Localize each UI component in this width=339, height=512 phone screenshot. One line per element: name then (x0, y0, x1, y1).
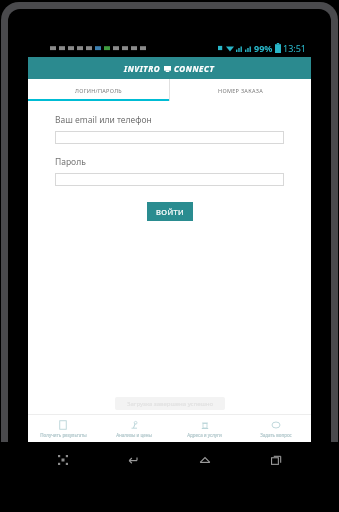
button[interactable]: Адреса и услуги (169, 415, 240, 442)
button[interactable]: Задать вопрос (240, 415, 311, 442)
button[interactable]: ВОЙТИ (147, 202, 193, 221)
button[interactable]: НОМЕР ЗАКАЗА (170, 79, 311, 101)
staticText: ВОЙТИ (156, 207, 185, 217)
button[interactable]: Recent apps (267, 451, 285, 469)
staticText: ЛОГИН/ПАРОЛЬ (75, 87, 122, 94)
other: Адреса и услуги (200, 420, 210, 430)
other: Анализы и цены (129, 420, 139, 430)
staticText: 99% (254, 42, 273, 54)
staticText: Адреса и услуги (187, 432, 222, 438)
button[interactable]: Анализы и цены (98, 415, 169, 442)
other: Задать вопрос (271, 420, 281, 430)
button[interactable]: Screenshot (55, 452, 71, 468)
staticText: INVITRO (124, 63, 161, 74)
staticText: CONNECT (174, 63, 215, 74)
button[interactable]: Back (125, 451, 143, 469)
staticText: Пароль (55, 156, 86, 168)
staticText: Получить результаты (40, 432, 87, 438)
button[interactable]: Получить результаты (28, 415, 98, 442)
button[interactable] (55, 173, 284, 186)
button[interactable]: ЛОГИН/ПАРОЛЬ (28, 79, 169, 101)
staticText: Ваш email или телефон (55, 114, 152, 126)
staticText: НОМЕР ЗАКАЗА (218, 87, 263, 94)
button[interactable]: Home (196, 451, 214, 469)
staticText: 13:51 (283, 42, 307, 54)
staticText: Анализы и цены (116, 432, 152, 438)
button[interactable] (55, 131, 284, 144)
staticText: Задать вопрос (260, 432, 292, 438)
staticText: Загрузка завершена успешно (127, 400, 214, 408)
other: Получить результаты (58, 420, 68, 430)
